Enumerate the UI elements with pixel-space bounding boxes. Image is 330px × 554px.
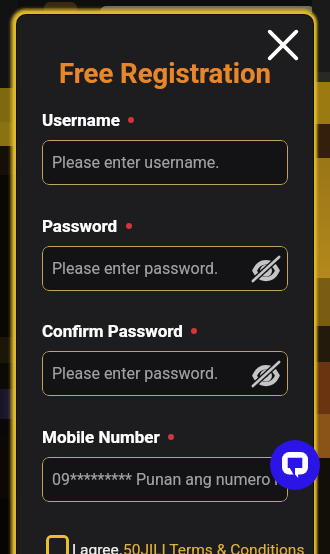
staticText: 09********* Punan ang numero ng mobile — [52, 470, 286, 489]
staticText: Please enter password. — [52, 259, 219, 278]
staticText: Password — [42, 216, 118, 236]
button[interactable]: Please enter password. — [42, 246, 288, 291]
staticText: Free Registration — [59, 57, 271, 89]
button[interactable]: Please enter username. — [42, 140, 288, 185]
staticText: Mobile Number — [42, 427, 160, 447]
button[interactable]: Close — [267, 29, 299, 61]
staticText: 50JILI Terms & Conditions — [123, 541, 305, 554]
staticText: Confirm Password — [42, 321, 183, 341]
button[interactable]: Please enter password. — [42, 351, 288, 396]
button[interactable]: 09********* Punan ang numero ng mobile — [42, 457, 288, 502]
staticText: Username — [42, 110, 120, 130]
staticText: Please enter password. — [52, 364, 219, 383]
staticText: Please enter username. — [52, 153, 220, 172]
button[interactable]: Show password — [252, 360, 280, 388]
button[interactable]: Show password — [252, 255, 280, 283]
staticText: I agree. — [72, 541, 123, 554]
button[interactable]: Live chat — [270, 440, 320, 490]
button[interactable]: I agree. — [46, 535, 305, 554]
